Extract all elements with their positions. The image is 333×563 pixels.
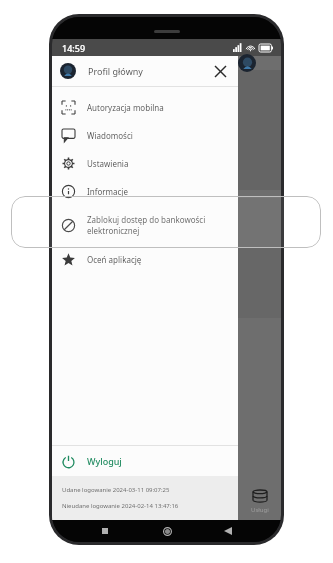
- button[interactable]: Autoryzacja mobilna: [52, 93, 238, 121]
- button[interactable]: Informacje: [52, 177, 238, 205]
- staticText: Autoryzacja mobilna: [87, 102, 164, 113]
- button[interactable]: Zamknij: [210, 61, 230, 81]
- button[interactable]: Home: [158, 522, 176, 540]
- button[interactable]: Ustawienia: [52, 149, 238, 177]
- button[interactable]: Wiadomości: [52, 121, 238, 149]
- button[interactable]: Recent apps: [96, 522, 114, 540]
- button[interactable]: Zablokuj dostęp do bankowości elektronic…: [52, 205, 238, 245]
- button[interactable]: Back: [219, 522, 237, 540]
- button[interactable]: Profil: [60, 63, 76, 79]
- button[interactable]: Usługi: [251, 490, 269, 514]
- staticText: Oceń aplikację: [87, 254, 142, 265]
- staticText: Profil główny: [88, 65, 143, 77]
- staticText: Informacje: [87, 186, 128, 197]
- staticText: Zablokuj dostęp do bankowości elektronic…: [87, 214, 206, 237]
- staticText: 14:59: [62, 42, 86, 54]
- button[interactable]: Oceń aplikację: [52, 245, 238, 273]
- staticText: Ustawienia: [87, 158, 129, 169]
- button[interactable]: Wyloguj: [52, 446, 238, 476]
- staticText: Nieudane logowanie 2024-02-14 13:47:16: [62, 502, 179, 510]
- staticText: Usługi: [251, 506, 269, 514]
- staticText: Wyloguj: [87, 455, 122, 467]
- staticText: Udane logowanie 2024-03-11 09:07:25: [62, 486, 170, 494]
- staticText: Wiadomości: [87, 130, 133, 141]
